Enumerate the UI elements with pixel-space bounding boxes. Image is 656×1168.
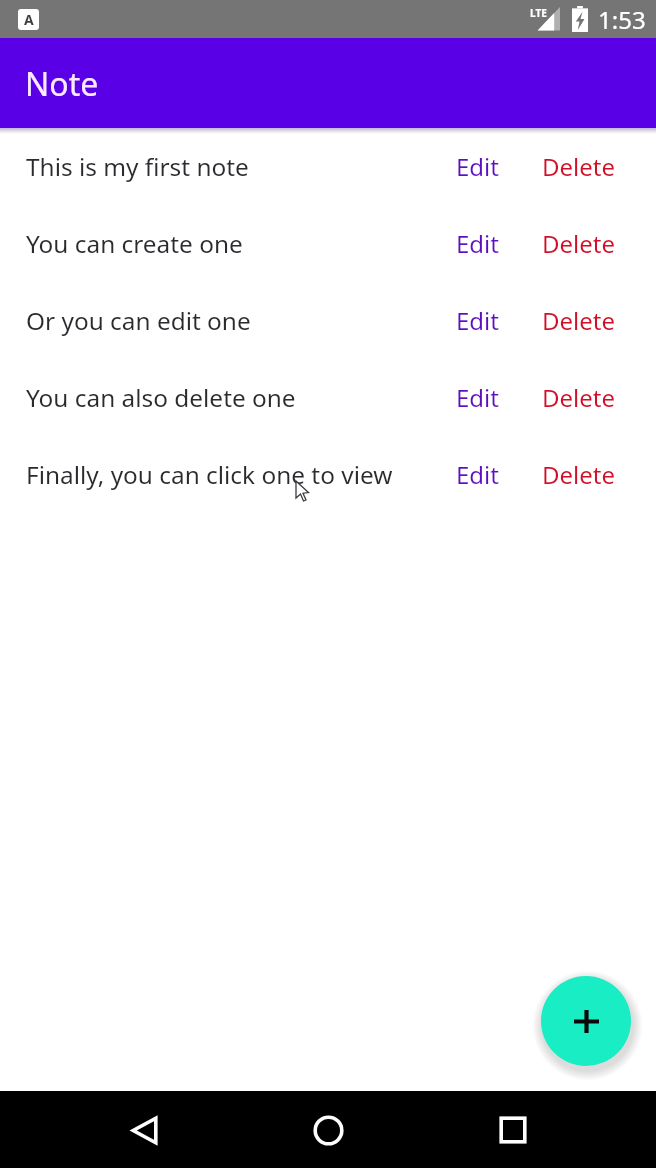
button[interactable]: Finally, you can click one to view bbox=[0, 436, 656, 513]
staticText: This is my first note bbox=[26, 150, 446, 183]
button[interactable]: Edit bbox=[446, 213, 509, 274]
button[interactable]: Home bbox=[298, 1100, 358, 1160]
staticText: Delete bbox=[542, 458, 615, 491]
button[interactable]: You can create one bbox=[0, 205, 656, 282]
staticText: Delete bbox=[542, 381, 615, 414]
button[interactable]: Delete bbox=[532, 444, 625, 505]
button[interactable]: Or you can edit one bbox=[0, 282, 656, 359]
button[interactable]: Add note bbox=[541, 976, 631, 1066]
staticText: 1:53 bbox=[598, 3, 646, 36]
staticText: Delete bbox=[542, 150, 615, 183]
staticText: Finally, you can click one to view bbox=[26, 458, 446, 491]
button[interactable]: Recents bbox=[483, 1100, 543, 1160]
staticText: Edit bbox=[456, 458, 499, 491]
button[interactable]: This is my first note bbox=[0, 128, 656, 205]
staticText: Note bbox=[25, 62, 99, 106]
staticText: Delete bbox=[542, 304, 615, 337]
staticText: You can create one bbox=[26, 227, 446, 260]
button[interactable]: Edit bbox=[446, 136, 509, 197]
button[interactable]: Edit bbox=[446, 290, 509, 351]
button[interactable]: Delete bbox=[532, 290, 625, 351]
staticText: Edit bbox=[456, 150, 499, 183]
button[interactable]: Edit bbox=[446, 367, 509, 428]
button[interactable]: Delete bbox=[532, 136, 625, 197]
staticText: LTE bbox=[530, 6, 547, 20]
button[interactable]: You can also delete one bbox=[0, 359, 656, 436]
staticText: Delete bbox=[542, 227, 615, 260]
button[interactable]: Delete bbox=[532, 213, 625, 274]
button[interactable]: Back bbox=[114, 1100, 174, 1160]
staticText: Edit bbox=[456, 304, 499, 337]
staticText: You can also delete one bbox=[26, 381, 446, 414]
button[interactable]: Delete bbox=[532, 367, 625, 428]
staticText: Edit bbox=[456, 227, 499, 260]
staticText: A bbox=[24, 10, 34, 29]
staticText: Or you can edit one bbox=[26, 304, 446, 337]
staticText: Edit bbox=[456, 381, 499, 414]
button[interactable]: Edit bbox=[446, 444, 509, 505]
